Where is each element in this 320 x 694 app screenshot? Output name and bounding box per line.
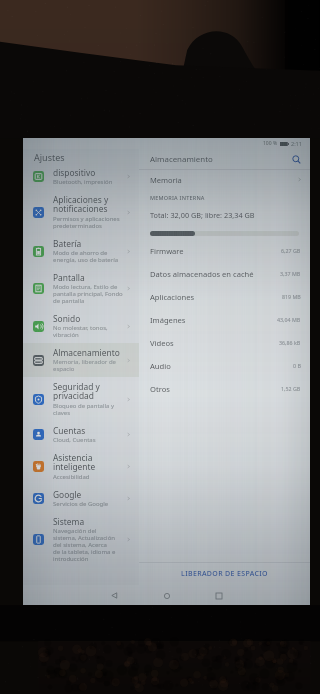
staticText: Bloqueo de pantalla y claves — [53, 402, 115, 417]
button[interactable]: Audio — [139, 354, 310, 377]
staticText: MEMORIA INTERNA — [150, 194, 205, 201]
button[interactable]: Google — [23, 485, 139, 512]
button[interactable]: Memoria — [139, 170, 310, 189]
staticText: Bluetooth, impresión — [53, 178, 113, 186]
staticText: Ajustes — [34, 151, 65, 163]
staticText: Seguridad y privacidad — [53, 381, 100, 402]
button[interactable]: Otros — [139, 377, 310, 400]
staticText: Firmware — [150, 246, 281, 256]
button[interactable]: Videos — [139, 331, 310, 354]
staticText: Asistencia inteligente — [53, 452, 96, 473]
button[interactable]: Inicio — [158, 587, 175, 604]
staticText: 36,86 kB — [279, 339, 301, 346]
staticText: Pantalla — [53, 272, 85, 283]
staticText: Total: 32,00 GB; libre: 23,34 GB — [150, 210, 255, 220]
staticText: Cuentas — [53, 425, 86, 436]
staticText: Aplicaciones — [150, 292, 282, 302]
staticText: Permisos y aplicaciones predeterminados — [53, 215, 120, 230]
button[interactable]: Recientes — [210, 587, 227, 604]
button[interactable]: Buscar — [289, 152, 303, 166]
staticText: Cloud, Cuentas — [53, 436, 96, 444]
staticText: Accesibilidad — [53, 473, 90, 481]
staticText: 100 % — [263, 140, 278, 147]
staticText: Videos — [150, 338, 279, 348]
staticText: dispositivo — [53, 167, 96, 178]
staticText: Otros — [150, 384, 281, 394]
button[interactable]: Seguridad y privacidad — [23, 377, 139, 421]
button[interactable]: Imágenes — [139, 308, 310, 331]
staticText: LIBERADOR DE ESPACIO — [181, 569, 268, 579]
staticText: Sonido — [53, 313, 81, 324]
staticText: 2:11 — [291, 140, 302, 147]
staticText: Servicios de Google — [53, 500, 109, 508]
button[interactable]: Aplicaciones y notificaciones — [23, 190, 139, 234]
button[interactable]: dispositivo — [23, 163, 139, 190]
staticText: Memoria, liberador de espacio — [53, 358, 116, 373]
staticText: Almacenamiento — [150, 154, 289, 165]
staticText: 1,52 GB — [281, 385, 301, 392]
button[interactable]: Sistema — [23, 512, 139, 567]
button[interactable]: Firmware — [139, 239, 310, 262]
staticText: Batería — [53, 238, 82, 249]
staticText: 3,37 MB — [280, 270, 301, 277]
button[interactable]: Cuentas — [23, 421, 139, 448]
staticText: Navegación del sistema, Actualización de… — [53, 527, 116, 563]
staticText: Imágenes — [150, 315, 277, 325]
staticText: Almacenamiento — [53, 347, 120, 358]
staticText: Audio — [150, 361, 293, 371]
staticText: 0 B — [293, 362, 301, 369]
button[interactable]: Datos almacenados en caché — [139, 262, 310, 285]
staticText: No molestar, tonos, vibración — [53, 324, 108, 339]
button[interactable]: Atrás — [106, 587, 123, 604]
button[interactable]: Sonido — [23, 309, 139, 343]
button[interactable]: LIBERADOR DE ESPACIO — [139, 563, 310, 585]
staticText: Aplicaciones y notificaciones — [53, 194, 109, 215]
staticText: Google — [53, 489, 82, 500]
button[interactable]: Aplicaciones — [139, 285, 310, 308]
staticText: Datos almacenados en caché — [150, 269, 280, 279]
button[interactable]: Pantalla — [23, 268, 139, 309]
button[interactable]: Asistencia inteligente — [23, 448, 139, 485]
staticText: Modo de ahorro de energía, uso de baterí… — [53, 249, 119, 264]
staticText: Modo lectura, Estilo de pantalla princip… — [53, 283, 123, 305]
button[interactable]: Batería — [23, 234, 139, 268]
staticText: Sistema — [53, 516, 85, 527]
staticText: Memoria — [150, 175, 297, 185]
staticText: 6,27 GB — [281, 247, 301, 254]
staticText: 43,04 MB — [277, 316, 301, 323]
staticText: 819 MB — [282, 293, 301, 300]
button[interactable]: Almacenamiento — [23, 343, 139, 377]
